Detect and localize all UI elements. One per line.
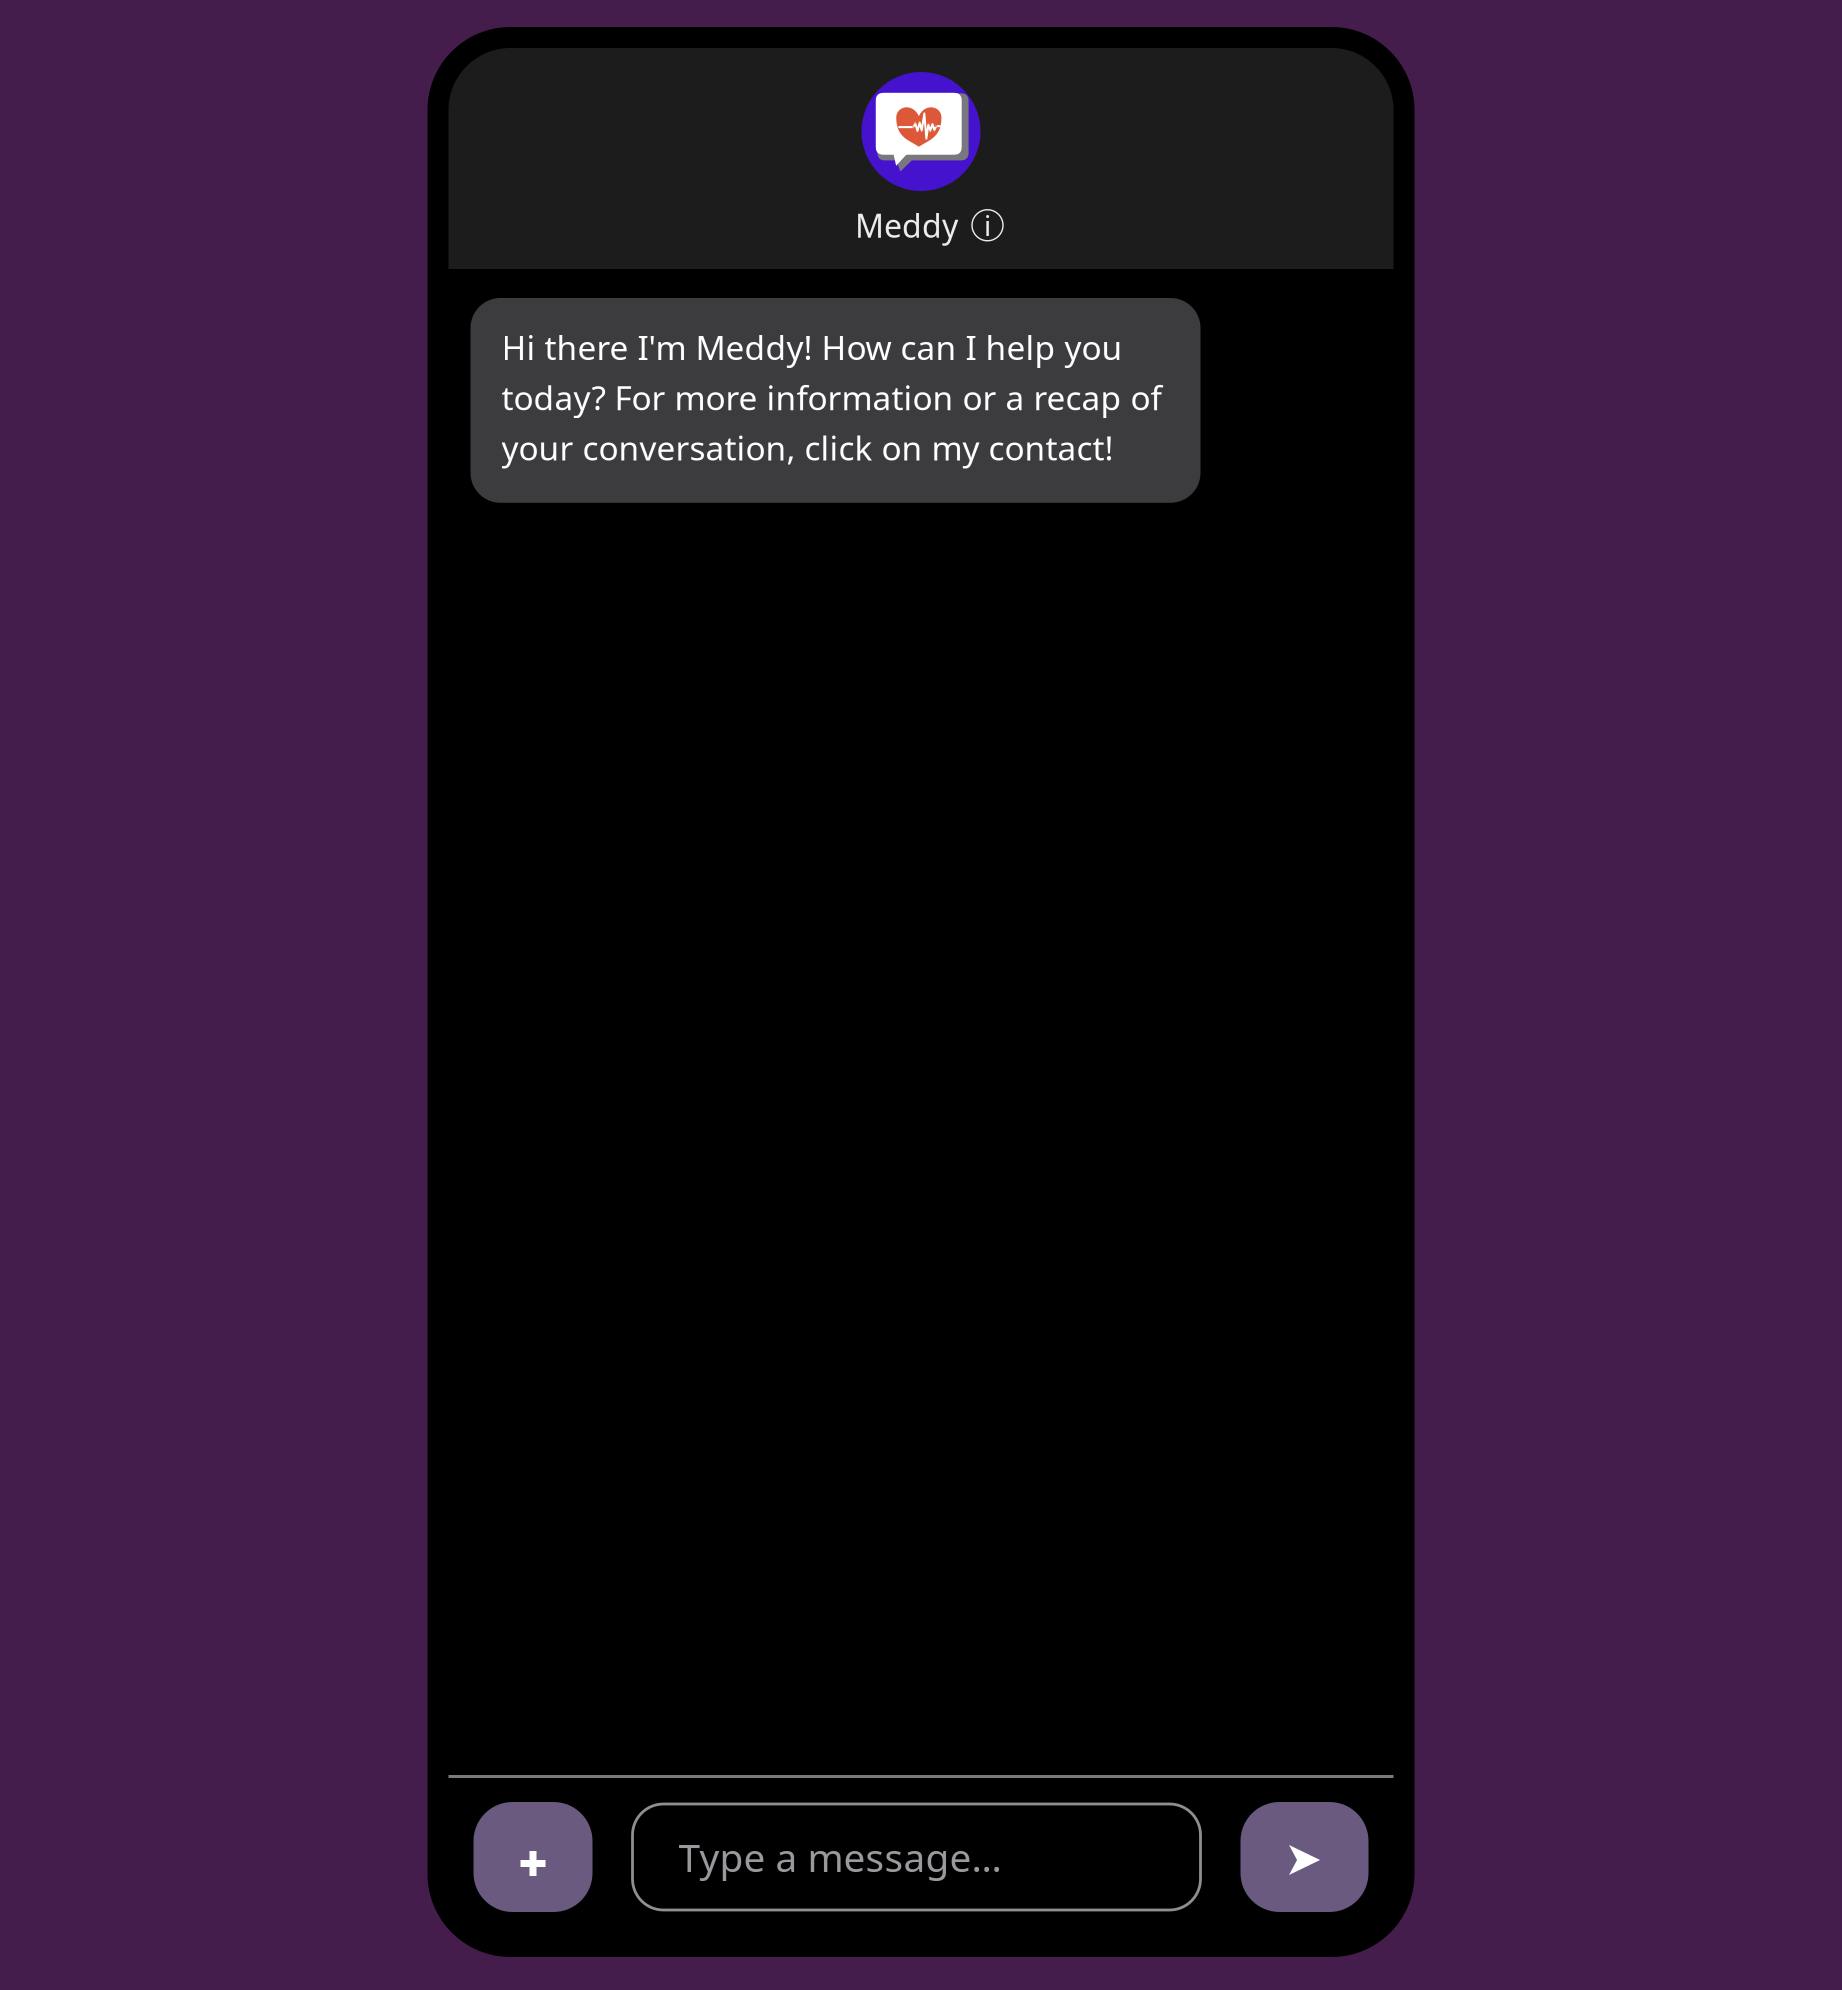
staticText: Meddy bbox=[855, 204, 958, 246]
staticText: Hi there I'm Meddy! How can I help you t… bbox=[501, 325, 1161, 470]
staticText: i bbox=[984, 207, 991, 244]
button[interactable]: Send bbox=[1240, 1802, 1368, 1912]
button[interactable]: Add attachment bbox=[473, 1802, 592, 1912]
staticText: Type a message... bbox=[678, 1831, 1001, 1883]
button[interactable]: Type a message... bbox=[632, 1804, 1200, 1910]
button[interactable]: Meddy bbox=[839, 198, 1003, 252]
